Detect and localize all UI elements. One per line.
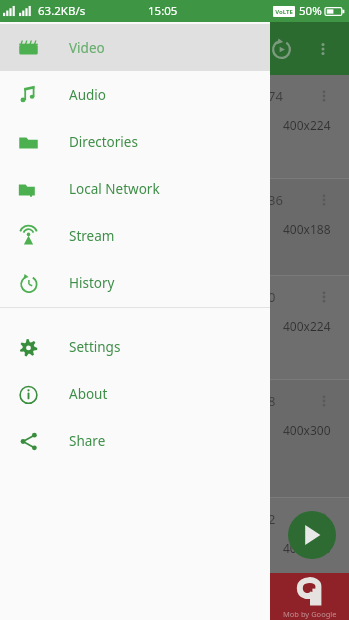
- button[interactable]: Stream: [0, 212, 270, 259]
- staticText: Directories: [69, 133, 138, 151]
- staticText: Video: [69, 39, 105, 57]
- button[interactable]: About: [0, 370, 270, 417]
- staticText: 36: [268, 191, 283, 209]
- staticText: 15:05: [148, 3, 178, 19]
- button[interactable]: More options: [305, 31, 341, 67]
- button[interactable]: Settings: [0, 323, 270, 370]
- button[interactable]: History: [0, 259, 270, 306]
- button[interactable]: Directories: [0, 118, 270, 165]
- button[interactable]: Local Network: [0, 165, 270, 212]
- button[interactable]: Refresh: [261, 29, 301, 69]
- staticText: 63.2KB/s: [38, 3, 86, 19]
- button[interactable]: Video: [0, 24, 270, 71]
- button[interactable]: 4: [0, 616, 349, 620]
- staticText: 8: [268, 392, 276, 410]
- staticText: 400x300: [283, 422, 331, 438]
- staticText: Stream: [69, 227, 115, 245]
- button[interactable]: 8: [0, 380, 349, 498]
- staticText: Mob by Google: [283, 609, 337, 619]
- staticText: About: [69, 385, 108, 403]
- staticText: Local Network: [69, 180, 160, 198]
- staticText: 0: [268, 288, 276, 306]
- button[interactable]: Play: [288, 511, 336, 559]
- staticText: Settings: [69, 338, 121, 356]
- button[interactable]: 74: [0, 75, 349, 179]
- button[interactable]: Audio: [0, 71, 270, 118]
- staticText: 400x224: [283, 117, 331, 133]
- button[interactable]: 0: [0, 276, 349, 380]
- staticText: 400x300: [283, 540, 331, 556]
- staticText: Share: [69, 432, 106, 450]
- staticText: History: [69, 274, 115, 292]
- button[interactable]: 2: [0, 498, 349, 616]
- staticText: 2: [268, 510, 276, 528]
- staticText: Audio: [69, 86, 106, 104]
- button[interactable]: Share: [0, 417, 270, 464]
- staticText: 50%: [299, 3, 322, 19]
- staticText: 74: [268, 87, 283, 105]
- staticText: 400x224: [283, 318, 331, 334]
- staticText: 400x188: [283, 221, 331, 237]
- button[interactable]: Mob by Google: [270, 573, 349, 620]
- staticText: VoLTE: [275, 8, 293, 16]
- button[interactable]: 36: [0, 179, 349, 276]
